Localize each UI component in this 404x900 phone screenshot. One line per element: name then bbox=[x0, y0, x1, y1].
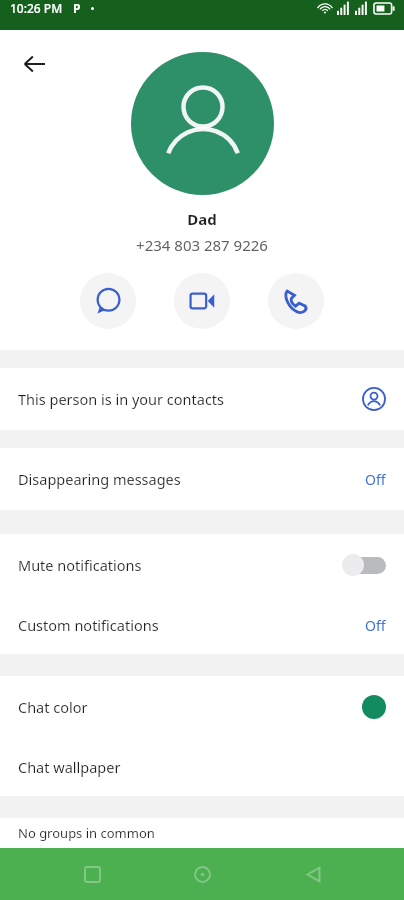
button[interactable]: Chat wallpaper bbox=[0, 738, 404, 796]
staticText: Disappearing messages bbox=[18, 469, 181, 489]
button[interactable]: Message bbox=[80, 273, 136, 329]
button[interactable]: Video call bbox=[174, 273, 230, 329]
button[interactable]: Mute notifications bbox=[0, 534, 404, 596]
button[interactable]: Recent apps bbox=[73, 855, 111, 893]
staticText: Mute notifications bbox=[18, 555, 142, 575]
button[interactable]: No groups in common bbox=[0, 818, 404, 848]
button[interactable]: This person is in your contacts bbox=[0, 368, 404, 430]
button[interactable]: Back bbox=[12, 42, 56, 86]
staticText: Off bbox=[365, 616, 386, 635]
staticText: Off bbox=[365, 470, 386, 489]
button[interactable]: Back bbox=[294, 855, 332, 893]
staticText: Dad bbox=[187, 209, 217, 229]
button[interactable]: Home bbox=[183, 855, 221, 893]
staticText: 10:26 PM bbox=[10, 0, 63, 16]
button[interactable]: Disappearing messages bbox=[0, 448, 404, 510]
staticText: Chat color bbox=[18, 697, 88, 717]
staticText: Chat wallpaper bbox=[18, 757, 121, 777]
button[interactable]: Call bbox=[268, 273, 324, 329]
staticText: Custom notifications bbox=[18, 615, 159, 635]
button[interactable]: Profile photo bbox=[131, 52, 274, 195]
button[interactable]: Custom notifications bbox=[0, 596, 404, 654]
staticText: This person is in your contacts bbox=[18, 389, 225, 409]
staticText: No groups in common bbox=[18, 824, 155, 842]
staticText: P bbox=[73, 0, 81, 16]
staticText: +234 803 287 9226 bbox=[136, 235, 268, 255]
button[interactable]: Chat color bbox=[0, 676, 404, 738]
